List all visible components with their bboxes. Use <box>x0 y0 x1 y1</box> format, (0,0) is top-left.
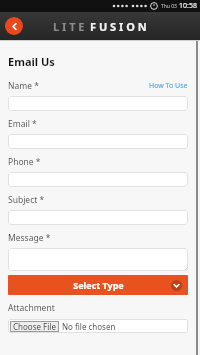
staticText: How To Use <box>149 81 188 91</box>
staticText: Message * <box>8 232 51 244</box>
button[interactable]: Choose File <box>8 319 188 333</box>
staticText: No file chosen <box>62 321 116 332</box>
button[interactable]: How To Use <box>149 81 188 91</box>
staticText: F U S I O N <box>90 19 147 34</box>
button[interactable] <box>8 134 188 149</box>
button[interactable] <box>8 172 188 187</box>
staticText: L I T E <box>53 19 85 34</box>
staticText: Name * <box>8 80 39 92</box>
staticText: Email * <box>8 118 37 130</box>
button[interactable]: Back <box>5 17 23 35</box>
button[interactable]: Select Type <box>8 275 188 295</box>
button[interactable] <box>8 96 188 111</box>
staticText: Select Type <box>73 279 124 291</box>
button[interactable] <box>8 210 188 225</box>
staticText: Email Us <box>8 54 55 69</box>
button[interactable] <box>8 248 188 271</box>
staticText: Thu 03 <box>161 3 177 10</box>
staticText: Choose File <box>13 321 56 332</box>
staticText: Attachment <box>8 302 55 314</box>
staticText: Subject * <box>8 194 45 206</box>
staticText: Phone * <box>8 156 41 168</box>
staticText: 10:58 <box>179 1 197 11</box>
